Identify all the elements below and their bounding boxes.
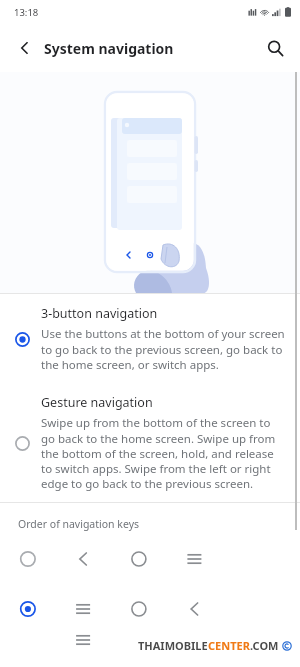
staticText: 13:18 bbox=[14, 6, 39, 19]
button[interactable]: Navigation key order option bbox=[0, 598, 300, 620]
button[interactable]: 3-button navigation bbox=[0, 294, 300, 383]
staticText: CENTER bbox=[208, 638, 250, 653]
staticText: Swipe up from the bottom of the screen t… bbox=[41, 415, 286, 491]
staticText: Use the buttons at the bottom of your sc… bbox=[41, 326, 286, 372]
staticText: Order of navigation keys bbox=[18, 517, 140, 531]
button[interactable]: Navigation key order option bbox=[0, 548, 300, 570]
staticText: THAIMOBILE bbox=[138, 638, 208, 653]
button[interactable]: Gesture navigation bbox=[0, 383, 300, 502]
staticText: System navigation bbox=[44, 39, 174, 58]
staticText: .COM bbox=[250, 638, 279, 653]
staticText: 3-button navigation bbox=[41, 305, 158, 322]
staticText: Gesture navigation bbox=[41, 394, 153, 411]
button[interactable]: Search bbox=[256, 29, 294, 67]
button[interactable]: Back bbox=[6, 29, 44, 67]
